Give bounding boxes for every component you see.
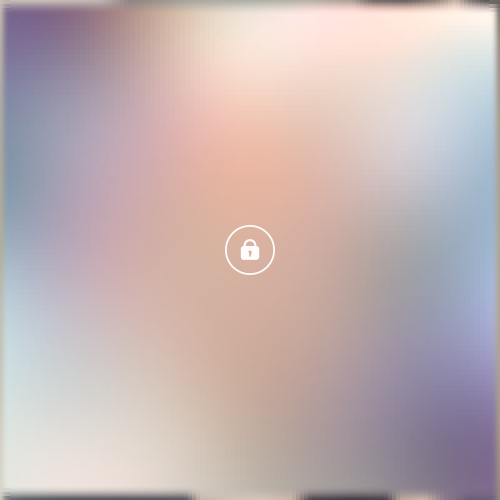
button[interactable]: Locked xyxy=(226,226,274,274)
